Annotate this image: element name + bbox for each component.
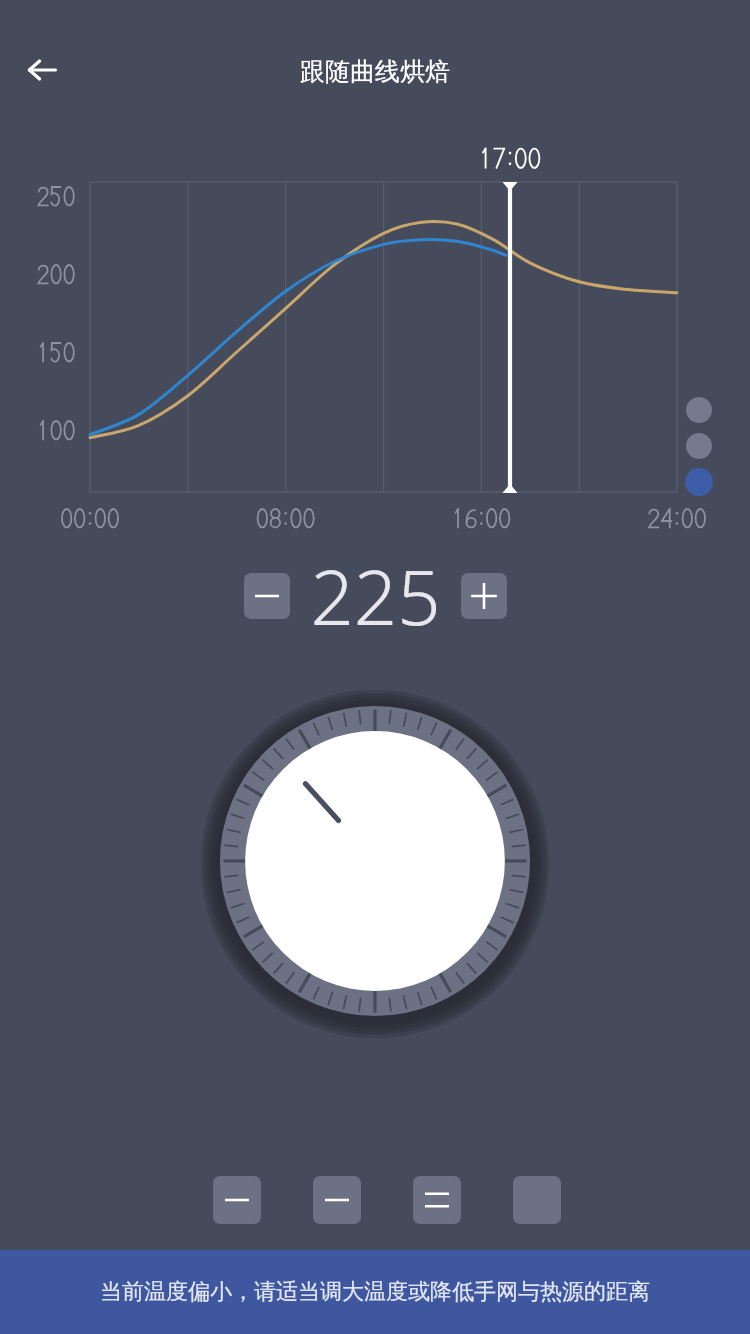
button[interactable]: Back [14,42,70,98]
staticText: 当前温度偏小，请适当调大温度或降低手网与热源的距离 [100,1278,650,1306]
staticText: 225 [310,544,441,648]
button[interactable]: 当前温度偏小，请适当调大温度或降低手网与热源的距离 [0,1250,750,1334]
button[interactable]: Decrease temperature [244,573,290,619]
button[interactable]: Temperature dial [205,691,545,1031]
button[interactable]: Level one [213,1176,261,1224]
button[interactable]: Level two [313,1176,361,1224]
button[interactable]: Increase temperature [461,573,507,619]
button[interactable]: Level three [413,1176,461,1224]
staticText: 跟随曲线烘焙 [300,56,450,87]
button[interactable]: Level four [513,1176,561,1224]
